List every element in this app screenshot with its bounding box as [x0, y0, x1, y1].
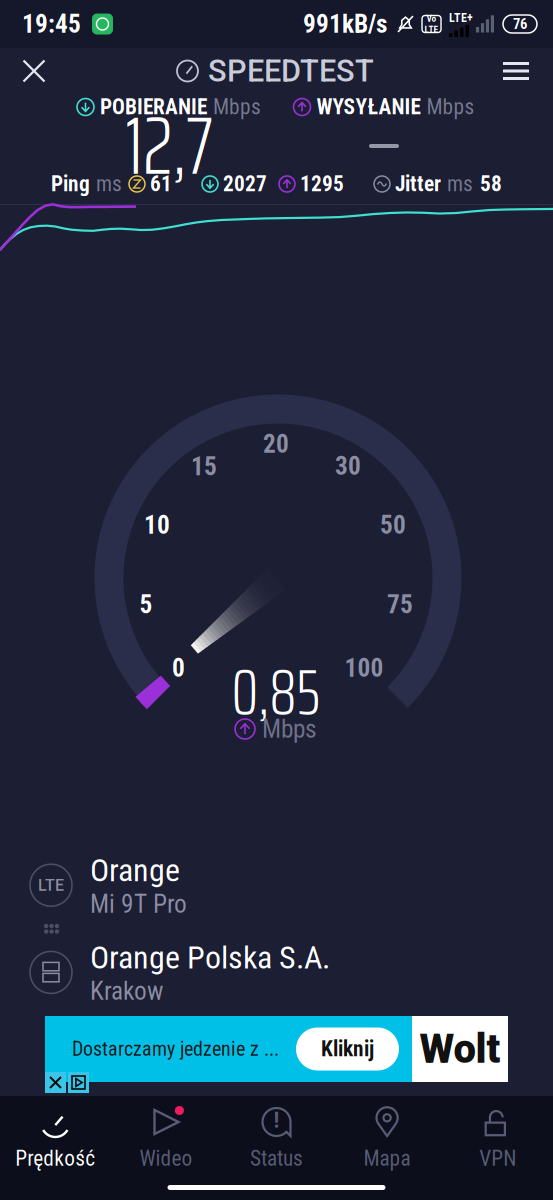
staticText: Mbps — [213, 94, 261, 119]
staticText: 15 — [191, 452, 217, 481]
staticText: 12,7 — [125, 83, 213, 209]
button[interactable]: Mapa — [332, 1106, 442, 1171]
staticText: 0 — [172, 653, 185, 683]
staticText: 1295 — [300, 171, 344, 196]
staticText: Orange — [90, 852, 180, 889]
button[interactable]: VPN — [442, 1106, 553, 1171]
staticText: LTE — [38, 876, 64, 895]
staticText: Dostarczamy jedzenie z ... — [72, 1037, 279, 1061]
staticText: 75 — [387, 590, 413, 619]
button[interactable]: Prędkość — [0, 1106, 111, 1171]
staticText: 61 — [150, 171, 172, 196]
staticText: Wideo — [139, 1146, 192, 1171]
staticText: VPN — [479, 1146, 516, 1171]
staticText: 10 — [144, 510, 170, 540]
staticText: 30 — [335, 451, 361, 481]
staticText: 19:45 — [22, 9, 81, 39]
staticText: Mi 9T Pro — [90, 889, 187, 919]
staticText: Prędkość — [15, 1146, 95, 1171]
staticText: 991kB/s — [303, 9, 388, 39]
staticText: Kliknij — [321, 1036, 374, 1061]
staticText: 100 — [344, 653, 383, 683]
staticText: Ping — [51, 171, 90, 196]
staticText: WYSYŁANIE — [316, 94, 420, 119]
staticText: POBIERANIE — [100, 94, 207, 119]
staticText: Wolt — [419, 1026, 500, 1072]
staticText: Jitter — [395, 171, 441, 196]
staticText: 50 — [380, 510, 406, 540]
staticText: 0,85 — [231, 642, 320, 742]
staticText: 58 — [480, 171, 502, 196]
staticText: Orange Polska S.A. — [90, 939, 330, 976]
staticText: 5 — [139, 590, 152, 619]
staticText: 20 — [263, 429, 289, 459]
staticText: LTE — [424, 24, 438, 35]
button[interactable]: Ad info — [68, 1072, 89, 1093]
button[interactable]: ! — [221, 1106, 332, 1171]
staticText: Status — [250, 1146, 303, 1171]
button[interactable]: Wideo — [111, 1106, 221, 1171]
staticText: ms — [447, 171, 473, 196]
staticText: Mbps — [426, 94, 474, 119]
staticText: Mbps — [262, 714, 317, 744]
staticText: Vo — [426, 13, 436, 24]
staticText: SPEEDTEST — [208, 53, 374, 89]
button[interactable]: Close ad — [45, 1072, 66, 1093]
staticText: ! — [273, 1107, 279, 1133]
staticText: ms — [96, 171, 122, 196]
staticText: LTE+ — [449, 11, 473, 25]
staticText: 2027 — [223, 171, 267, 196]
staticText: Krakow — [90, 976, 163, 1006]
button[interactable]: Menu — [488, 48, 544, 94]
staticText: 76 — [513, 15, 527, 33]
button[interactable]: Close — [6, 48, 62, 94]
staticText: Mapa — [364, 1146, 411, 1171]
button[interactable]: Kliknij — [296, 1027, 399, 1070]
